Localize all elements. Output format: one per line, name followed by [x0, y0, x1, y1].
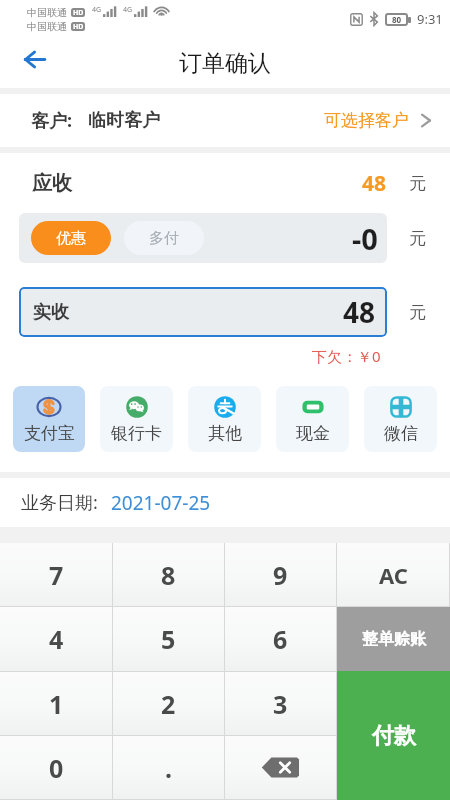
staticText: 0 [49, 751, 64, 785]
button[interactable]: 支付宝 [13, 386, 85, 452]
button[interactable]: . [113, 736, 224, 799]
button[interactable]: Backspace [225, 736, 336, 799]
staticText: 应收 [32, 171, 72, 196]
staticText: 中国联通 [27, 20, 67, 33]
button[interactable]: 银行卡 [100, 386, 173, 452]
staticText: 现金 [296, 423, 330, 444]
staticText: 2021-07-25 [111, 490, 211, 516]
button[interactable]: 业务日期: [0, 478, 450, 527]
staticText: 业务日期: [21, 490, 98, 515]
staticText: 中国联通 [27, 6, 67, 19]
staticText: 客户: [31, 108, 73, 133]
staticText: 微信 [384, 423, 418, 444]
staticText: 48 [343, 293, 376, 331]
button[interactable]: 付款 [337, 671, 450, 800]
staticText: 元 [409, 228, 426, 249]
button[interactable]: Back [12, 38, 56, 80]
staticText: 1 [49, 687, 64, 721]
staticText: 8 [161, 558, 176, 592]
staticText: 其他 [208, 423, 242, 444]
staticText: 元 [409, 302, 426, 323]
staticText: HD [73, 8, 84, 17]
button[interactable]: 微信 [364, 386, 437, 452]
staticText: 银行卡 [111, 423, 162, 444]
staticText: -0 [352, 219, 378, 258]
staticText: 可选择客户 [324, 110, 409, 131]
staticText: 整单赊账 [362, 629, 426, 649]
staticText: 多付 [149, 229, 179, 248]
staticText: 支付宝 [24, 423, 75, 444]
staticText: 6 [273, 622, 288, 656]
staticText: 订单确认 [179, 49, 271, 78]
staticText: 优惠 [56, 229, 86, 248]
staticText: 5 [161, 622, 176, 656]
button[interactable]: 7 [0, 543, 112, 606]
button[interactable]: 其他 [188, 386, 261, 452]
button[interactable]: 实收 [19, 287, 387, 337]
button[interactable]: 8 [113, 543, 224, 606]
staticText: 4G [92, 5, 102, 15]
staticText: 9 [273, 558, 288, 592]
button[interactable]: 0 [0, 736, 112, 799]
staticText: 4G [123, 5, 133, 15]
staticText: . [165, 751, 173, 785]
button[interactable]: 2 [113, 672, 224, 735]
button[interactable]: 整单赊账 [337, 607, 450, 671]
button[interactable]: 优惠 [31, 221, 111, 255]
staticText: 3 [273, 687, 288, 721]
button[interactable]: 5 [113, 607, 224, 671]
button[interactable]: 1 [0, 672, 112, 735]
button[interactable]: 3 [225, 672, 336, 735]
staticText: 2 [161, 687, 176, 721]
staticText: HD [73, 22, 84, 31]
button[interactable]: 现金 [276, 386, 349, 452]
staticText: 实收 [33, 301, 69, 324]
button[interactable]: 4 [0, 607, 112, 671]
staticText: 48 [362, 169, 387, 198]
button[interactable]: AC [337, 543, 449, 606]
button[interactable]: 客户: [0, 94, 450, 147]
staticText: 元 [409, 173, 426, 194]
staticText: 付款 [372, 722, 416, 750]
staticText: 9:31 [417, 10, 443, 28]
staticText: AC [379, 560, 408, 590]
staticText: 临时客户 [88, 109, 160, 132]
staticText: 80 [392, 14, 402, 25]
staticText: 4 [49, 622, 64, 656]
staticText: 下欠：￥0 [312, 346, 381, 366]
button[interactable]: 6 [225, 607, 336, 671]
button[interactable]: 9 [225, 543, 336, 606]
staticText: 7 [49, 558, 64, 592]
button[interactable]: 多付 [124, 221, 204, 255]
